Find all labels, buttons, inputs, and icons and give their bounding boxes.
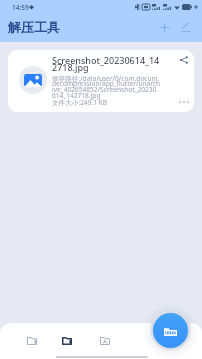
- button[interactable]: Shared: [94, 330, 116, 352]
- button[interactable]: Screenshot_20230614_14 2718.jpg: [8, 50, 194, 112]
- staticText: Screenshot_20230614_14 2718.jpg: [52, 54, 160, 74]
- staticText: 14:59: [12, 3, 29, 12]
- button[interactable]: Add: [153, 16, 175, 38]
- button[interactable]: More options: [176, 94, 192, 110]
- staticText: 解压工具: [8, 19, 60, 35]
- staticText: 保存路径:/data/user/0/com.docum. decompressi…: [52, 74, 161, 100]
- button[interactable]: Share: [176, 52, 192, 68]
- button[interactable]: Edit: [175, 16, 197, 38]
- button[interactable]: Files: [21, 330, 43, 352]
- button[interactable]: Archives: [56, 330, 78, 352]
- staticText: 文件大小:249.1 KB: [52, 98, 108, 107]
- button[interactable]: Open archive: [153, 313, 188, 348]
